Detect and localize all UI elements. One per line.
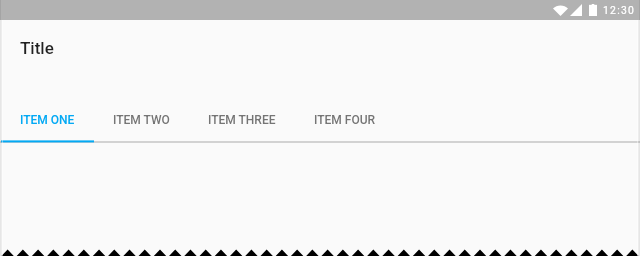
button[interactable]: ITEM TWO [94,97,189,143]
button[interactable]: ITEM FOUR [295,97,395,143]
button[interactable]: ITEM THREE [189,97,295,143]
staticText: ITEM THREE [208,113,276,127]
staticText: ITEM TWO [113,113,170,127]
other: Battery [589,4,597,16]
staticText: 12:30 [603,4,636,16]
staticText: ITEM ONE [20,113,75,127]
button[interactable]: ITEM ONE [1,97,94,143]
staticText: ITEM FOUR [314,113,376,127]
other: Mobile signal [570,4,582,16]
staticText: Title [20,38,54,58]
other: Wi-Fi [553,4,568,16]
